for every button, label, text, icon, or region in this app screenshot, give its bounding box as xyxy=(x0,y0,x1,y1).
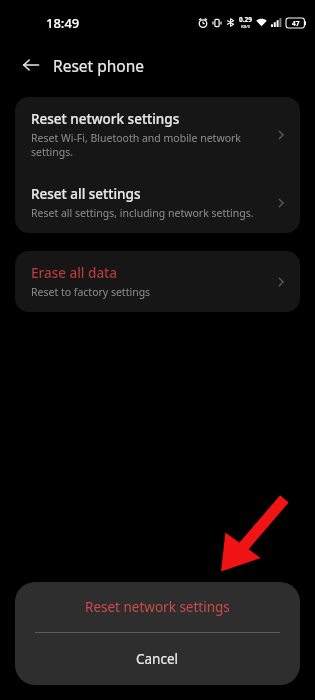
staticText: Reset network settings xyxy=(31,110,180,128)
staticText: Reset to factory settings xyxy=(31,285,151,299)
staticText: Reset all settings, including network se… xyxy=(31,206,254,220)
staticText: Reset all settings xyxy=(31,185,141,203)
button[interactable]: Reset all settings xyxy=(15,172,300,233)
button[interactable]: Back xyxy=(14,48,48,82)
staticText: Reset phone xyxy=(53,55,144,76)
staticText: 18:49 xyxy=(46,14,80,32)
button[interactable]: Cancel xyxy=(15,633,300,685)
staticText: 47 xyxy=(292,19,300,28)
button[interactable]: Erase all data xyxy=(15,251,300,312)
staticText: Cancel xyxy=(136,650,179,668)
button[interactable]: Reset network settings xyxy=(15,97,300,172)
staticText: KB/S xyxy=(241,24,251,30)
staticText: Erase all data xyxy=(31,264,118,282)
staticText: Reset network settings xyxy=(85,598,230,616)
button[interactable]: Reset network settings xyxy=(15,582,300,632)
staticText: Reset Wi-Fi, Bluetooth and mobile networ… xyxy=(31,131,274,159)
staticText: 0.29 xyxy=(239,15,252,24)
